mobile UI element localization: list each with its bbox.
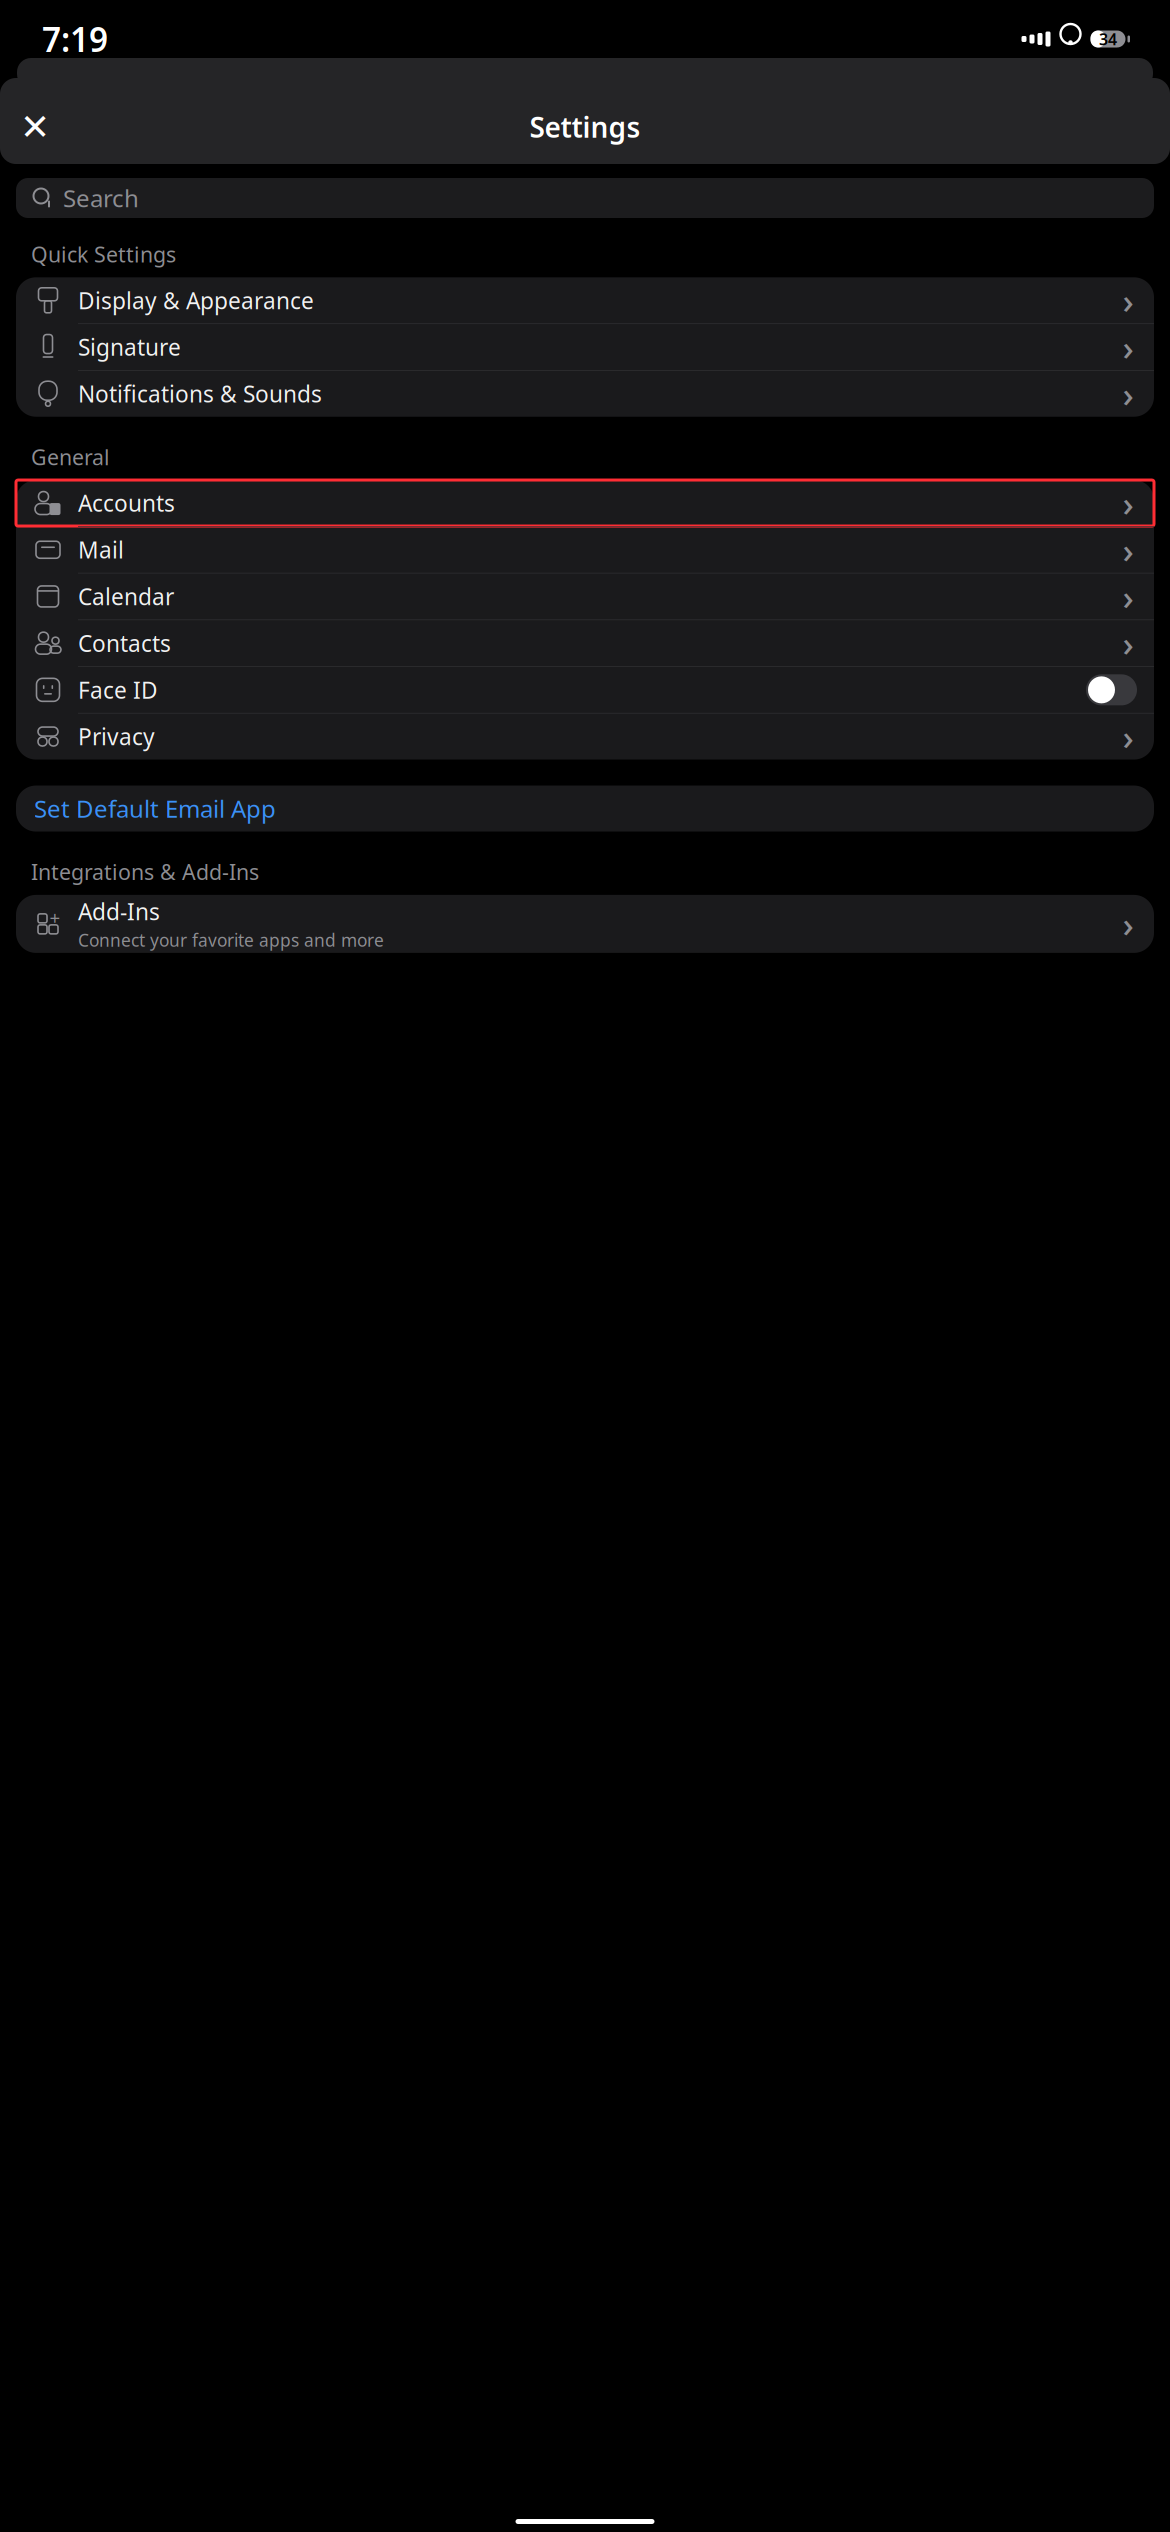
button[interactable]: Contacts <box>16 620 1154 666</box>
staticText: Notifications & Sounds <box>78 379 322 409</box>
staticText: 34 <box>1099 28 1117 50</box>
staticText: Integrations & Add-Ins <box>31 858 259 886</box>
staticText: Mail <box>78 535 124 565</box>
button[interactable]: Signature <box>16 324 1154 370</box>
staticText: Accounts <box>78 488 175 518</box>
staticText: Face ID <box>78 675 158 705</box>
button[interactable]: Face ID <box>16 667 1154 713</box>
staticText: Connect your favorite apps and more <box>78 928 384 951</box>
staticText: › <box>1122 713 1133 759</box>
staticText: Search <box>63 182 139 214</box>
button[interactable]: Accounts <box>16 480 1154 526</box>
staticText: › <box>1122 277 1133 323</box>
button[interactable]: Close <box>6 98 64 156</box>
staticText: General <box>31 443 110 471</box>
staticText: Display & Appearance <box>78 285 314 315</box>
staticText: › <box>1122 480 1133 526</box>
staticText: Calendar <box>78 581 174 611</box>
staticText: + <box>49 905 60 930</box>
staticText: › <box>1122 371 1133 417</box>
staticText: › <box>1122 620 1133 666</box>
button[interactable]: Calendar <box>16 573 1154 619</box>
button[interactable]: Search <box>16 178 1154 218</box>
button[interactable]: + <box>16 895 1154 953</box>
button[interactable]: Set Default Email App <box>16 786 1154 832</box>
staticText: Settings <box>529 108 640 146</box>
staticText: Add-Ins <box>78 896 160 926</box>
staticText: 7:19 <box>42 17 108 61</box>
staticText: › <box>1122 901 1133 947</box>
staticText: › <box>1122 573 1133 619</box>
button[interactable]: Notifications & Sounds <box>16 371 1154 417</box>
staticText: Quick Settings <box>31 240 176 268</box>
button[interactable]: Mail <box>16 527 1154 573</box>
staticText: › <box>1122 527 1133 573</box>
staticText: Signature <box>78 332 181 362</box>
staticText: Set Default Email App <box>34 793 276 824</box>
staticText: ✕ <box>20 107 50 147</box>
button[interactable]: Display & Appearance <box>16 277 1154 323</box>
staticText: › <box>1122 324 1133 370</box>
staticText: Privacy <box>78 721 155 752</box>
button[interactable]: Privacy <box>16 714 1154 760</box>
staticText: Contacts <box>78 628 171 658</box>
